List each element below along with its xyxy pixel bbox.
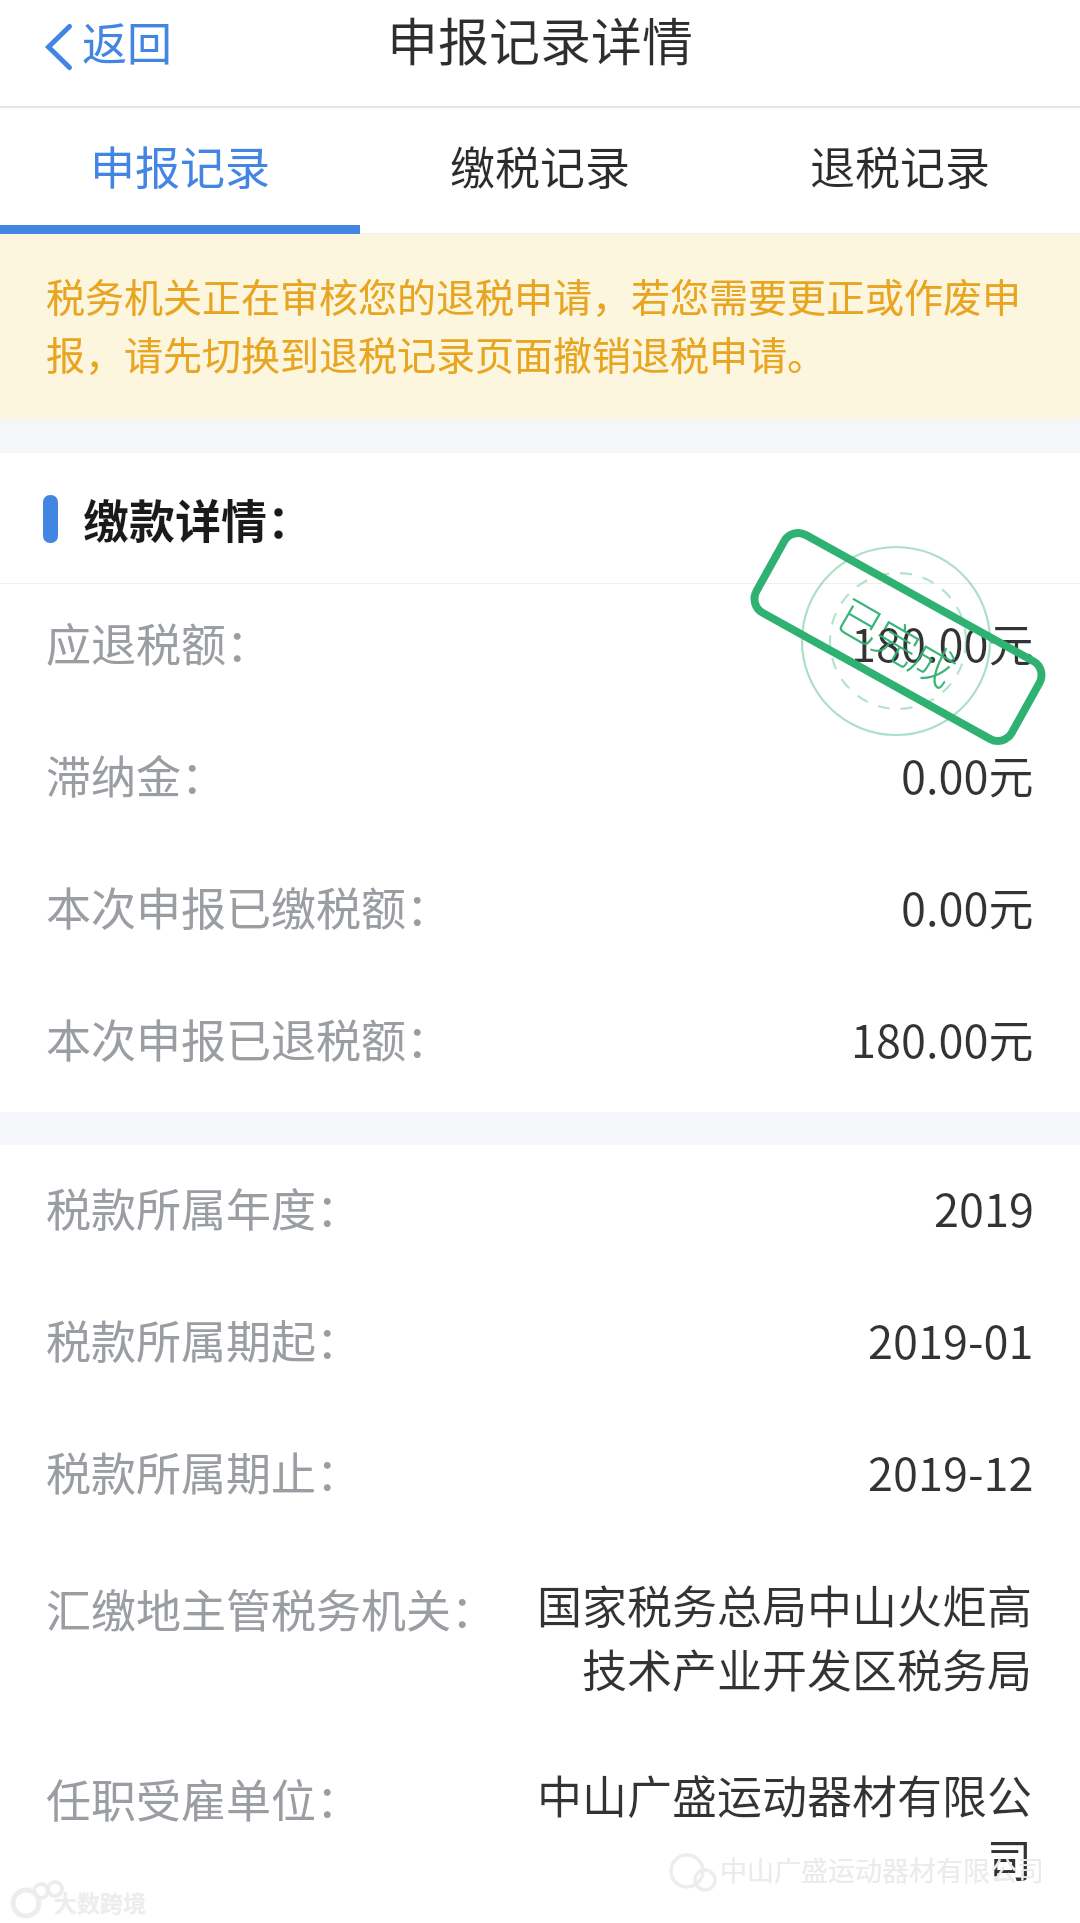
- staticText: 0.00元: [901, 742, 1034, 807]
- button[interactable]: 滞纳金：: [0, 716, 1080, 848]
- button[interactable]: 税款所属期起：: [0, 1281, 1080, 1413]
- button[interactable]: 缴税记录: [360, 108, 720, 234]
- button[interactable]: 本次申报已退税额：: [0, 980, 1080, 1112]
- staticText: 税款所属年度：: [46, 1175, 362, 1240]
- button[interactable]: 税款所属期止：: [0, 1413, 1080, 1545]
- staticText: 返回: [82, 9, 173, 74]
- staticText: 180.00元: [851, 610, 1034, 675]
- staticText: 2019-01: [868, 1307, 1034, 1372]
- staticText: 已完成: [826, 581, 967, 699]
- staticText: 任职受雇单位：: [46, 1766, 362, 1831]
- staticText: 退税记录: [810, 133, 991, 198]
- button[interactable]: 退税记录: [720, 108, 1080, 234]
- button[interactable]: 任职受雇单位：: [0, 1735, 1080, 1923]
- button[interactable]: 本次申报已缴税额：: [0, 848, 1080, 980]
- staticText: 180.00元: [851, 1006, 1034, 1071]
- staticText: 税款所属期起：: [46, 1307, 362, 1372]
- staticText: 0.00元: [901, 874, 1034, 939]
- button[interactable]: 申报记录: [0, 108, 360, 234]
- staticText: 2019: [934, 1175, 1034, 1240]
- staticText: 中山广盛运动器材有限公 司: [536, 1762, 1032, 1891]
- staticText: 税款所属期止：: [46, 1439, 362, 1504]
- staticText: 申报记录: [90, 133, 271, 198]
- staticText: 缴税记录: [450, 133, 631, 198]
- staticText: 中山广盛运动器材有限公司: [720, 1850, 1044, 1889]
- button[interactable]: 返回: [0, 0, 195, 108]
- staticText: 缴款详情：: [83, 485, 313, 552]
- staticText: 本次申报已退税额：: [46, 1006, 452, 1071]
- staticText: 滞纳金：: [46, 742, 227, 807]
- staticText: 税务机关正在审核您的退税申请，若您需要更正或作废申报，请先切换到退税记录页面撤销…: [46, 267, 1062, 381]
- staticText: 大数跨境: [54, 1885, 146, 1918]
- staticText: 应退税额：: [46, 610, 272, 675]
- button[interactable]: 应退税额：: [0, 584, 1080, 716]
- staticText: 本次申报已缴税额：: [46, 874, 452, 939]
- button[interactable]: 税款所属年度：: [0, 1149, 1080, 1281]
- staticText: 国家税务总局中山火炬高 技术产业开发区税务局: [536, 1572, 1032, 1701]
- staticText: 汇缴地主管税务机关：: [46, 1576, 497, 1641]
- button[interactable]: 汇缴地主管税务机关：: [0, 1545, 1080, 1735]
- staticText: 2019-12: [868, 1439, 1034, 1504]
- staticText: 申报记录详情: [387, 2, 694, 76]
